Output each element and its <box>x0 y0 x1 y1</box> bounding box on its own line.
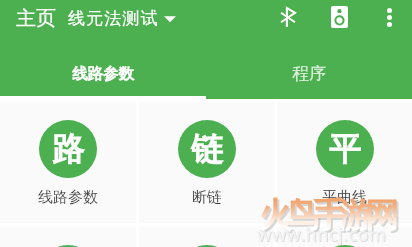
staticText: 线路参数 <box>72 64 134 84</box>
button[interactable]: More options <box>370 0 408 36</box>
button[interactable]: 平 <box>277 102 412 223</box>
button[interactable]: 边 <box>277 227 412 247</box>
button[interactable]: 竖 <box>0 227 136 247</box>
staticText: 路 <box>52 129 84 169</box>
staticText: www.hncj.com <box>257 222 387 247</box>
staticText: 平曲线 <box>322 188 367 207</box>
staticText: www.hncj.com <box>258 223 388 247</box>
button[interactable]: Bluetooth <box>267 0 309 36</box>
staticText: 链 <box>191 129 223 169</box>
staticText: 火鸟手游网 <box>260 196 394 239</box>
button[interactable]: 路 <box>0 102 136 223</box>
button[interactable]: Speaker <box>319 0 359 36</box>
button[interactable]: 线元法测试 <box>68 8 176 29</box>
staticText: 主页 <box>16 6 56 31</box>
button[interactable]: 链 <box>139 102 274 223</box>
button[interactable]: 线路参数 <box>0 51 206 99</box>
staticText: 火鸟手游网 <box>258 194 392 237</box>
staticText: 线路参数 <box>38 188 98 207</box>
staticText: 线元法测试 <box>68 8 159 29</box>
staticText: 平 <box>329 129 361 169</box>
button[interactable]: 超 <box>139 227 274 247</box>
staticText: 程序 <box>292 63 326 84</box>
button[interactable]: 程序 <box>206 51 412 99</box>
staticText: 断链 <box>192 188 222 207</box>
